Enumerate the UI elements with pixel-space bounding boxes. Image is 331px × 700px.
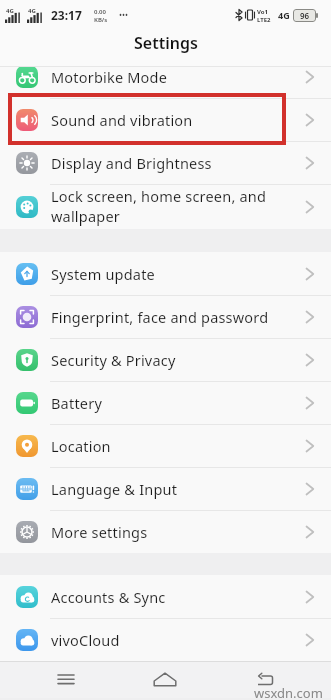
button[interactable]: More settings [0, 510, 331, 553]
button[interactable]: Language & Input [0, 467, 331, 510]
button[interactable]: Battery [0, 381, 331, 424]
button[interactable]: Security & Privacy [0, 338, 331, 381]
button[interactable] [247, 663, 283, 696]
button[interactable] [147, 663, 183, 696]
button[interactable]: Fingerprint, face and password [0, 295, 331, 338]
staticText: Language & Input [51, 479, 178, 499]
button[interactable]: vivoCloud [0, 618, 331, 661]
staticText: vivoCloud [51, 630, 120, 650]
staticText: Fingerprint, face and password [51, 307, 269, 327]
button[interactable]: Display and Brightness [0, 141, 331, 184]
staticText: More settings [51, 522, 148, 542]
button[interactable]: Location [0, 424, 331, 467]
staticText: 23:17 [51, 7, 82, 23]
staticText: 96 [300, 10, 310, 21]
staticText: ••• [119, 9, 129, 20]
staticText: Display and Brightness [51, 153, 212, 173]
staticText: wsxdn.com [254, 684, 323, 700]
button[interactable]: Lock screen, home screen, and [0, 184, 331, 229]
staticText: 0.00 [94, 8, 106, 16]
staticText: 4G [6, 7, 14, 15]
staticText: Motorbike Mode [51, 67, 168, 87]
staticText: Vo1 [257, 8, 268, 16]
staticText: Security & Privacy [51, 350, 176, 370]
staticText: KB/s [94, 16, 108, 24]
button[interactable]: Motorbike Mode [0, 67, 331, 98]
staticText: System update [51, 264, 155, 284]
staticText: Battery [51, 393, 102, 413]
staticText: Sound and vibration [51, 110, 193, 130]
button[interactable]: System update [0, 252, 331, 295]
staticText: wallpaper [51, 206, 120, 226]
button[interactable]: Accounts & Sync [0, 575, 331, 618]
staticText: Settings [134, 32, 198, 54]
staticText: 4G [28, 7, 36, 15]
staticText: 4G [278, 9, 290, 21]
staticText: LTE2 [257, 16, 271, 24]
button[interactable]: Sound and vibration [0, 98, 331, 141]
button[interactable] [48, 663, 84, 696]
staticText: Location [51, 436, 111, 456]
staticText: Lock screen, home screen, and [51, 186, 267, 206]
staticText: Accounts & Sync [51, 587, 166, 607]
